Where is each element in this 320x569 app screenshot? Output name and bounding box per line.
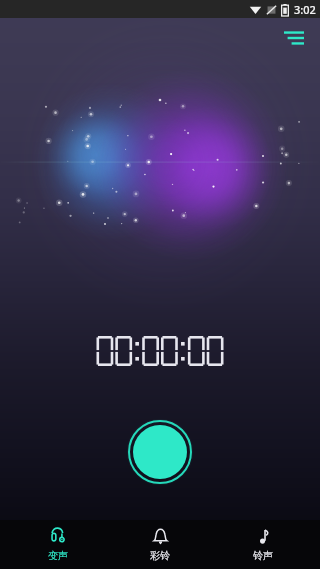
button[interactable]: Menu bbox=[278, 22, 310, 54]
staticText: 彩铃 bbox=[150, 549, 170, 562]
button[interactable]: Record bbox=[127, 419, 193, 485]
button[interactable]: 彩铃 bbox=[115, 520, 205, 569]
staticText: 3:02 bbox=[294, 2, 316, 17]
staticText: 铃声 bbox=[253, 549, 273, 562]
button[interactable]: 变声 bbox=[13, 520, 103, 569]
button[interactable]: 铃声 bbox=[218, 520, 308, 569]
staticText: 变声 bbox=[48, 549, 68, 562]
